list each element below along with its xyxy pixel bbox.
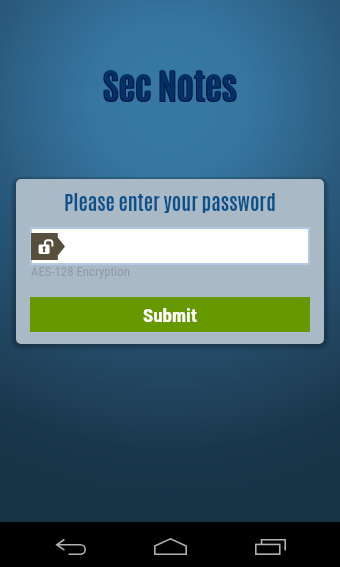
button[interactable]: Recent apps: [237, 522, 303, 567]
staticText: Sec Notes: [103, 59, 237, 103]
staticText: Submit: [143, 304, 197, 326]
button[interactable]: [32, 229, 308, 263]
staticText: Sec Notes: [104, 60, 238, 104]
button[interactable]: Home: [137, 522, 203, 567]
button[interactable]: Back: [38, 522, 104, 567]
staticText: Please enter your password: [64, 188, 276, 214]
staticText: AES-128 Encryption: [31, 264, 130, 279]
staticText: Sec Notes: [102, 60, 236, 104]
button[interactable]: Submit: [30, 297, 310, 332]
